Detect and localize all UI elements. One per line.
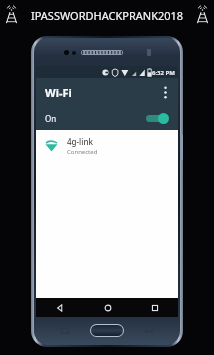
staticText: IPASSWORDHACKPRANK2018 bbox=[31, 8, 184, 23]
button[interactable]: On bbox=[36, 106, 178, 130]
staticText: Connected bbox=[67, 148, 98, 156]
button[interactable]: Wi-Fi on bbox=[144, 110, 170, 126]
button[interactable]: Home bbox=[84, 298, 131, 317]
staticText: On bbox=[45, 113, 57, 124]
staticText: 6:32 PM bbox=[152, 69, 175, 77]
staticText: Wi-Fi bbox=[45, 85, 72, 100]
button[interactable]: 4g-link bbox=[36, 130, 178, 162]
button[interactable]: Back bbox=[36, 298, 84, 317]
button[interactable]: More options bbox=[155, 78, 175, 106]
other: Home bbox=[91, 325, 123, 336]
staticText: 4g-link bbox=[67, 136, 93, 147]
button[interactable]: Recent apps bbox=[131, 298, 178, 317]
